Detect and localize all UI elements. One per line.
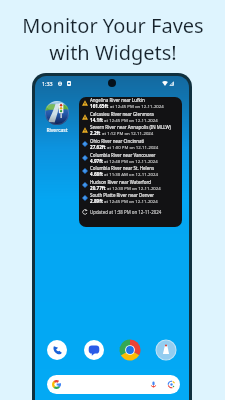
button[interactable]: Rivercast app [45,101,69,125]
staticText: 2.89ft [90,198,103,204]
staticText: South Platte River near Denver [90,192,154,198]
button[interactable]: Ohio River near Cincinnati [79,137,182,151]
button[interactable]: Search [47,375,180,394]
staticText: at 12:45 PM on 12-11-2024 [109,103,164,109]
button[interactable]: Angelina River near Lufkin [79,97,182,110]
button[interactable]: Calcasieu River near Glenmora [79,110,182,124]
staticText: Severn River near Annapolis (IN MLLW) [90,124,171,130]
button[interactable]: Messages [83,339,105,361]
staticText: at 12:48 PM on 12-11-2024 [103,158,158,164]
staticText: Hudson River near Waterford [90,179,151,185]
staticText: Columbia River near St. Helens [90,165,155,171]
staticText: at 12:30 PM on 12-11-2024 [106,185,161,191]
button[interactable]: South Platte River near Denver [79,191,182,205]
staticText: with Widgets! [49,39,177,66]
staticText: 2.2ft [90,130,101,136]
button[interactable]: Chrome [119,339,141,361]
staticText: at 11:30 AM on 12-11-2024 [103,171,158,177]
staticText: at 1:12 PM on 12-11-2024 [101,130,154,136]
staticText: Rivercast [46,127,68,134]
staticText: at 1:00 PM on 12-11-2024 [106,144,159,150]
staticText: 4.68ft [90,171,103,177]
button[interactable]: Severn River near Annapolis (IN MLLW) [79,123,182,137]
staticText: Angelina River near Lufkin [90,97,145,103]
staticText: at 12:45 PM on 12-11-2024 [103,117,158,123]
button[interactable]: Lighthouse [155,339,177,361]
staticText: Calcasieu River near Glenmora [90,111,154,117]
staticText: 14.1ft [90,117,103,123]
staticText: 4.97ft [90,158,103,164]
staticText: Monitor Your Faves [22,12,204,39]
button[interactable]: Columbia River near St. Helens [79,164,182,178]
button[interactable]: Angelina River near Lufkin [79,97,182,227]
staticText: Columbia River near Vancouver [90,152,156,158]
staticText: 161.65ft [90,103,109,109]
staticText: 1:33 [42,80,53,87]
staticText: Ohio River near Cincinnati [90,138,145,144]
button[interactable]: Phone [46,339,68,361]
staticText: 20.77ft [90,185,106,191]
staticText: Updated at 1:38 PM on 12-11-2024 [90,209,162,215]
staticText: at 12:45 PM on 12-11-2024 [103,198,158,204]
staticText: 27.62ft [90,144,106,150]
button[interactable]: Columbia River near Vancouver [79,151,182,165]
button[interactable]: Hudson River near Waterford [79,178,182,192]
